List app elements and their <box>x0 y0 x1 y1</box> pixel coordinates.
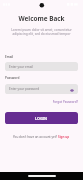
staticText: LOGIN <box>35 116 48 121</box>
staticText: Password <box>5 76 20 80</box>
button[interactable]: Sign up <box>58 135 70 139</box>
button[interactable]: Forgot Password? <box>0 100 78 104</box>
staticText: Lorem ipsum dolor sit amet, consectetur … <box>0 28 83 36</box>
staticText: Enter your password <box>9 87 40 91</box>
staticText: Email <box>5 55 14 59</box>
button[interactable]: Enter your email <box>5 62 78 71</box>
button[interactable]: LOGIN <box>5 112 78 124</box>
staticText: Enter your email <box>9 65 33 69</box>
button[interactable]: Enter your password <box>5 84 78 94</box>
button[interactable]: Show password <box>70 89 74 92</box>
staticText: Welcome Back <box>0 14 83 23</box>
staticText: You don't have an account yet? <box>13 135 58 139</box>
